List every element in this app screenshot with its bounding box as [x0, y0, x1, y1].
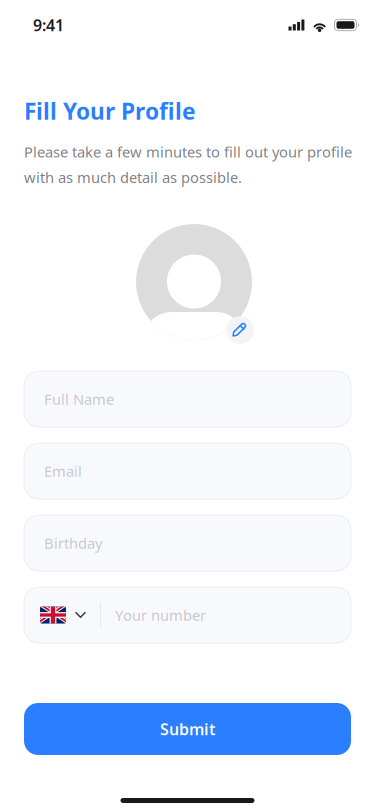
staticText: Please take a few minutes to fill out yo…	[24, 142, 352, 187]
staticText: Your number	[115, 605, 206, 625]
button[interactable]: Birthday	[24, 515, 351, 571]
staticText: Full Name	[44, 389, 114, 409]
staticText: Fill Your Profile	[24, 96, 196, 126]
button[interactable]: Change profile photo	[136, 224, 252, 340]
button[interactable]: Full Name	[24, 371, 351, 427]
staticText: 9:41	[33, 14, 64, 36]
button[interactable]: Submit	[24, 703, 351, 755]
staticText: Email	[44, 461, 82, 481]
button[interactable]: Your number	[101, 587, 351, 643]
staticText: Birthday	[44, 533, 102, 553]
button[interactable]: Select country code	[24, 587, 100, 643]
button[interactable]: Email	[24, 443, 351, 499]
staticText: Submit	[160, 718, 215, 740]
